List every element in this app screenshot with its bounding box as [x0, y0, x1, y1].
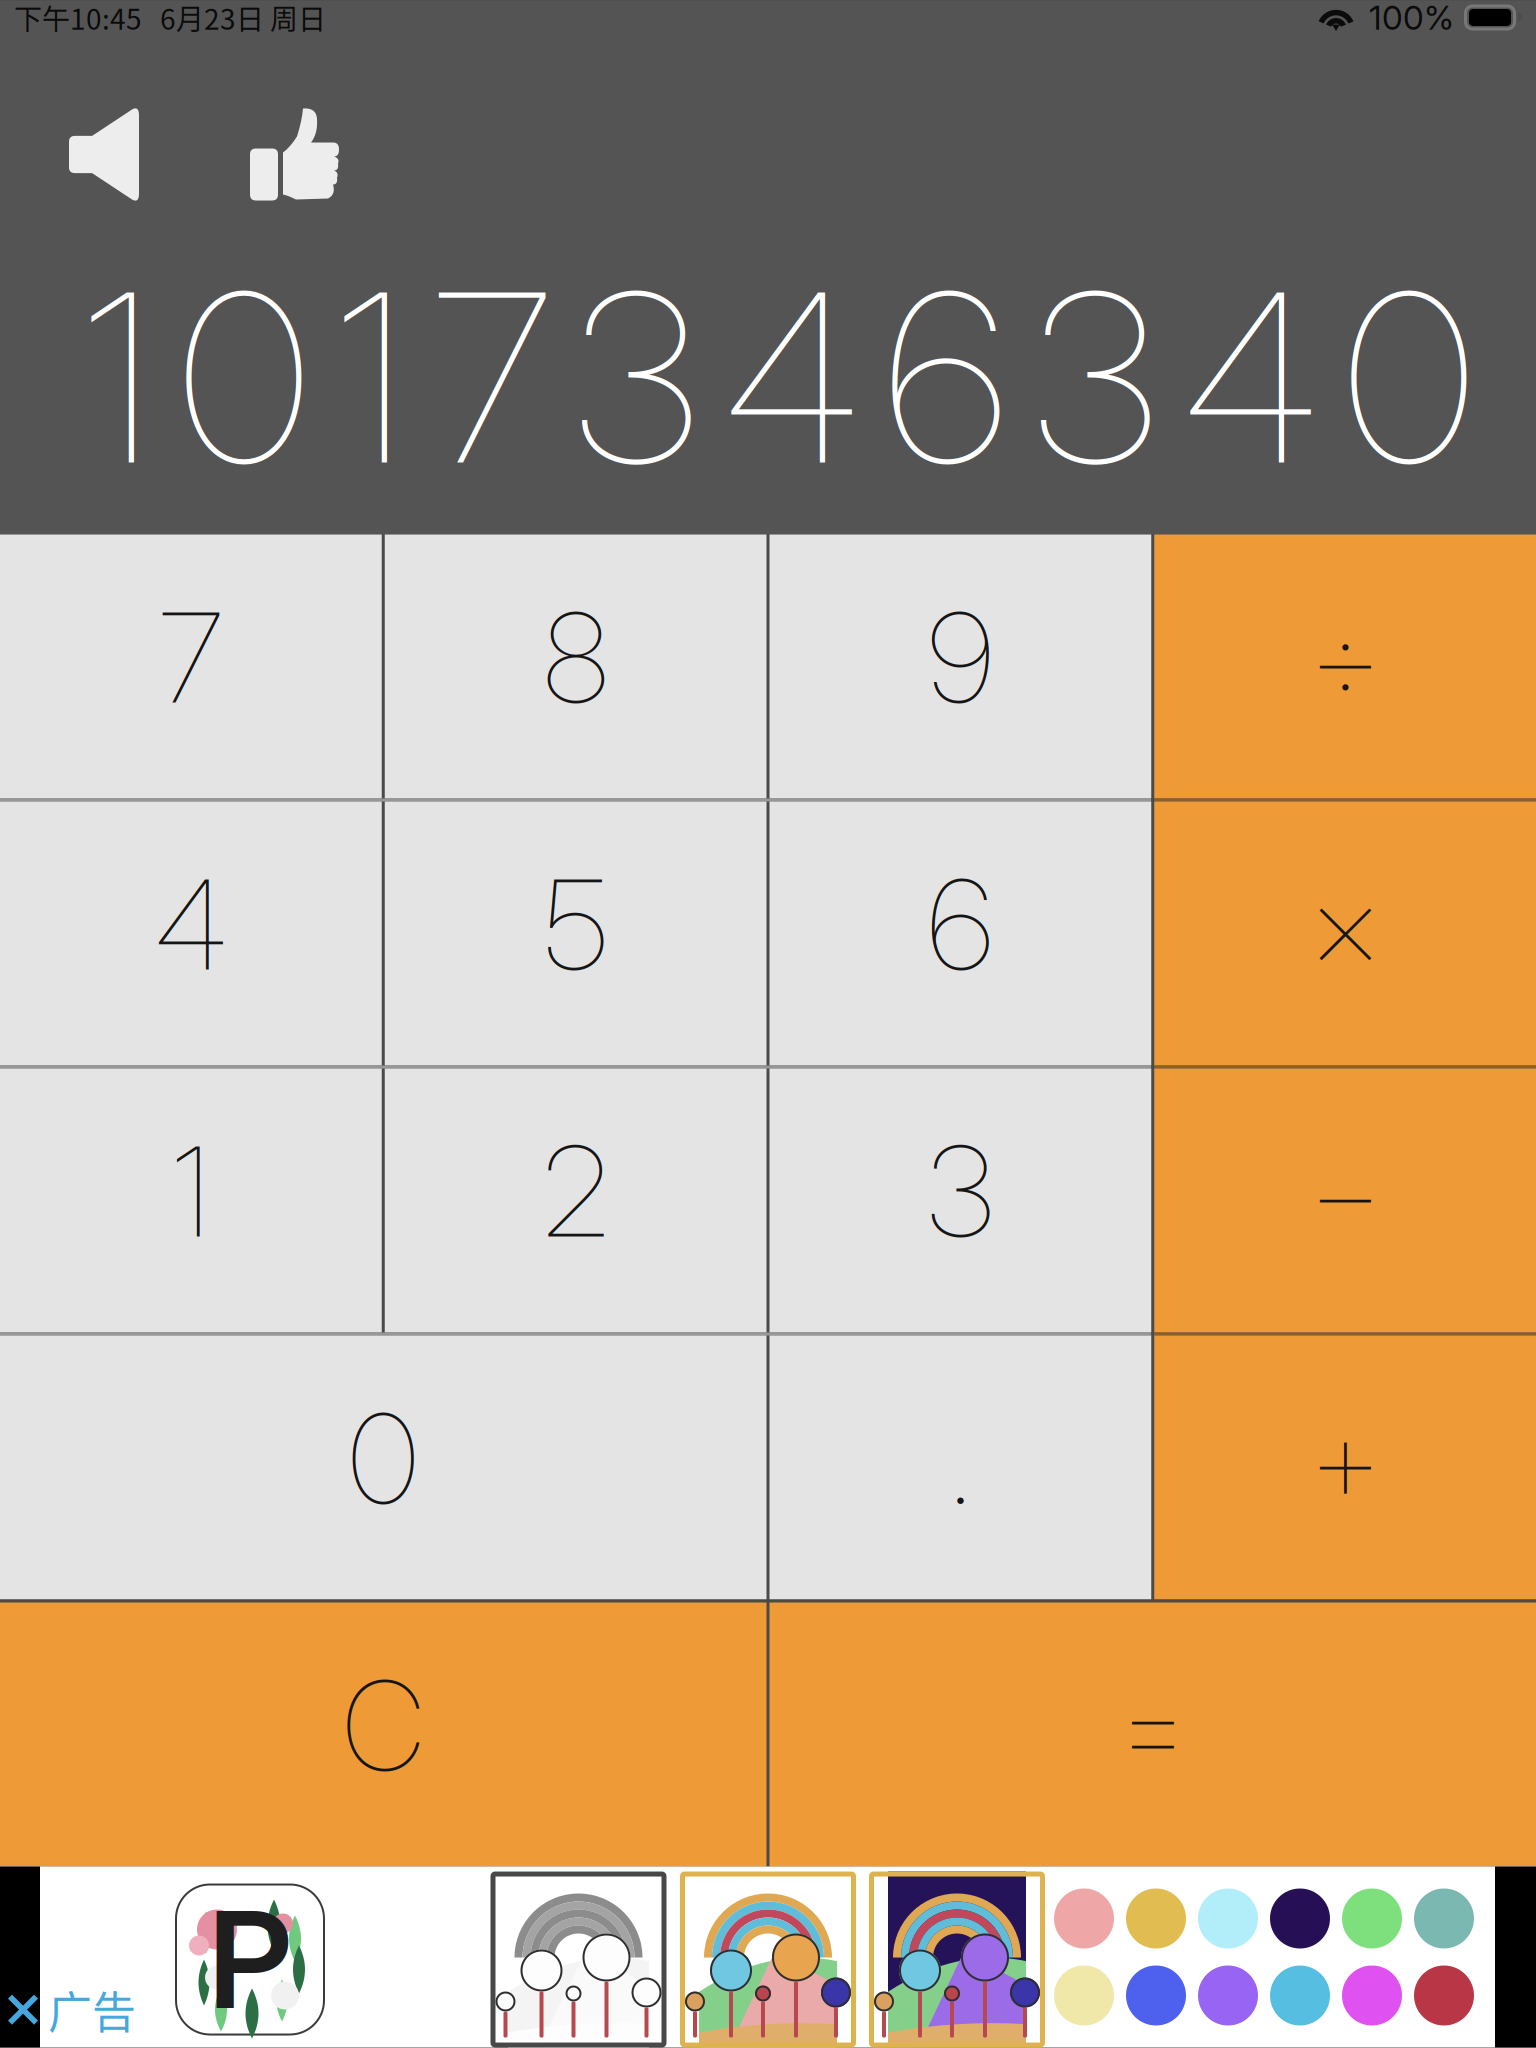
button[interactable]: =	[769, 1602, 1536, 1866]
staticText: 0	[349, 1383, 418, 1533]
button[interactable]: ×	[1154, 801, 1536, 1065]
staticText: 1017346340	[82, 236, 1474, 519]
staticText: 2	[543, 1116, 609, 1266]
staticText: 3	[927, 1116, 993, 1266]
staticText: +	[1310, 1383, 1381, 1533]
staticText: 6	[928, 849, 993, 999]
staticText: ÷	[1310, 582, 1381, 732]
staticText: 5	[544, 849, 607, 999]
staticText: 4	[155, 849, 227, 999]
staticText: 1	[172, 1116, 210, 1266]
staticText: 100%	[1369, 0, 1454, 38]
button[interactable]: −	[1154, 1068, 1536, 1332]
button[interactable]: .	[769, 1335, 1151, 1599]
button[interactable]: Sound	[69, 105, 139, 203]
staticText: 9	[928, 582, 993, 732]
button[interactable]: +	[1154, 1335, 1536, 1599]
button[interactable]: P	[0, 1866, 1536, 2047]
staticText: P	[208, 1879, 291, 2040]
button[interactable]: 8	[385, 534, 767, 798]
staticText: −	[1310, 1116, 1381, 1266]
staticText: .	[948, 1384, 972, 1533]
staticText: 8	[544, 582, 608, 732]
button[interactable]: 0	[0, 1335, 766, 1599]
button[interactable]: ÷	[1154, 534, 1536, 798]
staticText: 下午10:45 6月23日 周日	[14, 0, 326, 38]
staticText: ×	[1310, 849, 1381, 999]
button[interactable]: C	[0, 1602, 766, 1866]
button[interactable]: Rate app	[250, 106, 340, 202]
button[interactable]: 9	[769, 534, 1151, 798]
staticText: 广告	[48, 1978, 136, 2041]
staticText: C	[342, 1650, 424, 1800]
button[interactable]: 2	[385, 1068, 767, 1332]
staticText: 7	[159, 582, 223, 732]
button[interactable]: 1	[0, 1068, 382, 1332]
button[interactable]: 6	[769, 801, 1151, 1065]
button[interactable]: 4	[0, 801, 382, 1065]
staticText: =	[1117, 1650, 1188, 1800]
button[interactable]: 3	[769, 1068, 1151, 1332]
button[interactable]: 5	[385, 801, 767, 1065]
button[interactable]: 7	[0, 534, 382, 798]
